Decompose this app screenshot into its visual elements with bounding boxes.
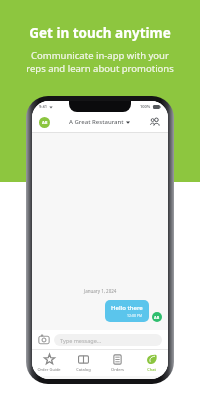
button[interactable]: A Great Restaurant xyxy=(69,118,130,126)
staticText: Orders xyxy=(111,367,124,372)
staticText: Chat xyxy=(147,367,156,372)
staticText: Get in touch anytime xyxy=(29,24,171,42)
button[interactable]: Contacts xyxy=(149,116,161,128)
staticText: Communicate in-app with your reps and le… xyxy=(26,49,174,75)
staticText: January 1, 2024 xyxy=(84,288,117,294)
staticText: Hello there xyxy=(111,304,143,312)
staticText: AB xyxy=(154,315,160,320)
staticText: AB xyxy=(42,120,48,125)
button[interactable]: Catalog xyxy=(66,350,100,376)
button[interactable]: Order Guide xyxy=(32,350,66,376)
staticText: Order Guide xyxy=(37,367,61,372)
button[interactable]: Profile xyxy=(39,117,50,128)
staticText: A Great Restaurant xyxy=(69,118,124,126)
button[interactable]: Type message... xyxy=(54,334,162,346)
staticText: 100% xyxy=(140,104,151,109)
button[interactable]: Camera xyxy=(38,334,50,346)
staticText: Catalog xyxy=(76,367,91,372)
button[interactable]: Orders xyxy=(100,350,134,376)
staticText: 12:00 PM xyxy=(127,313,143,318)
button[interactable]: Chat xyxy=(134,350,168,376)
staticText: Type message... xyxy=(60,337,102,344)
button[interactable]: Hello there xyxy=(105,300,149,322)
staticText: 9:41 xyxy=(39,104,47,109)
